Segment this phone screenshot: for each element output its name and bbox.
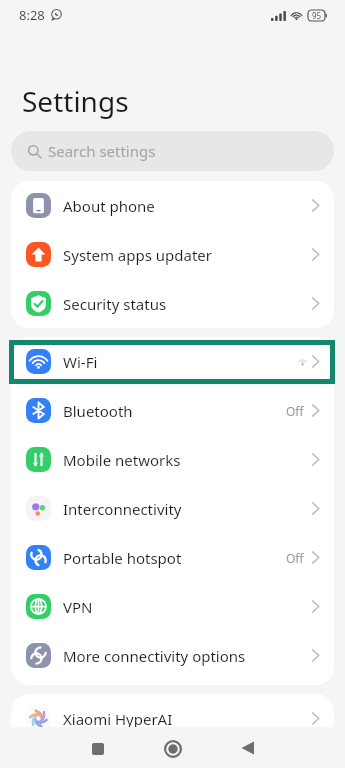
button[interactable]: Home bbox=[155, 730, 191, 766]
staticText: About phone bbox=[63, 196, 155, 216]
staticText: Mobile networks bbox=[63, 450, 181, 470]
staticText: 8:28 bbox=[19, 6, 45, 24]
button[interactable]: Portable hotspot bbox=[11, 533, 334, 582]
button[interactable]: Bluetooth bbox=[11, 386, 334, 435]
staticText: Search settings bbox=[48, 141, 156, 161]
button[interactable]: Search settings bbox=[11, 131, 334, 171]
staticText: 95 bbox=[312, 10, 322, 21]
button[interactable]: Xiaomi HyperAI bbox=[11, 694, 334, 743]
button[interactable]: About phone bbox=[11, 181, 334, 230]
staticText: Xiaomi HyperAI bbox=[63, 709, 173, 729]
staticText: Off bbox=[286, 550, 304, 566]
button[interactable]: Wi-Fi bbox=[11, 337, 334, 386]
staticText: System apps updater bbox=[63, 245, 213, 265]
staticText: More connectivity options bbox=[63, 646, 246, 666]
staticText: VPN bbox=[63, 597, 93, 617]
button[interactable]: Security status bbox=[11, 279, 334, 328]
staticText: Settings bbox=[22, 82, 129, 120]
staticText: Bluetooth bbox=[63, 401, 133, 421]
button[interactable]: System apps updater bbox=[11, 230, 334, 279]
button[interactable]: Recents bbox=[80, 727, 115, 768]
button[interactable]: Mobile networks bbox=[11, 435, 334, 484]
button[interactable]: VPN bbox=[11, 582, 334, 631]
button[interactable]: Back bbox=[230, 727, 265, 768]
button[interactable]: Interconnectivity bbox=[11, 484, 334, 533]
staticText: Security status bbox=[63, 294, 167, 314]
staticText: Portable hotspot bbox=[63, 548, 182, 568]
staticText: Interconnectivity bbox=[63, 499, 182, 519]
staticText: Wi-Fi bbox=[63, 352, 98, 372]
staticText: Off bbox=[286, 403, 304, 419]
button[interactable]: More connectivity options bbox=[11, 631, 334, 680]
